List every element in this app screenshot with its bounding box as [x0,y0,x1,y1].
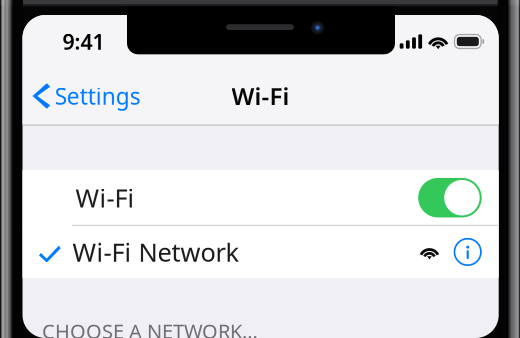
staticText: 9:41 [62,27,104,56]
button[interactable]: Wi-Fi [22,170,499,225]
staticText: Wi-Fi [75,181,134,214]
button[interactable]: Wi-Fi Network [22,226,499,278]
button[interactable]: Network details [454,238,482,266]
staticText: Wi-Fi [232,80,290,112]
button[interactable]: Settings [22,75,149,117]
staticText: Wi-Fi Network [72,235,239,269]
staticText: Settings [55,81,141,111]
staticText: CHOOSE A NETWORK… [42,318,258,338]
